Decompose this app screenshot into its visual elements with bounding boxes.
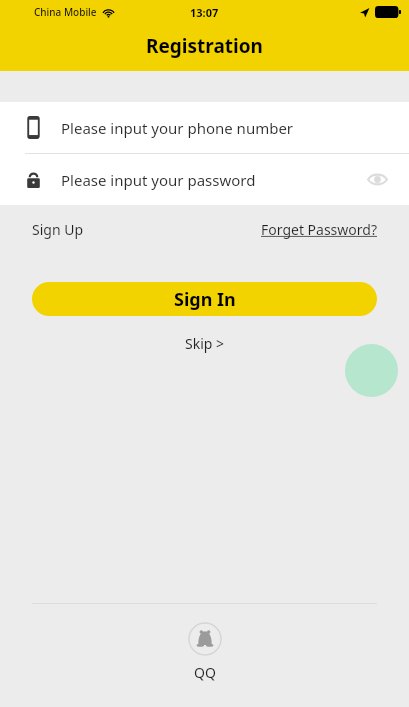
staticText: Skip > [185,334,225,353]
staticText: Forget Password? [261,220,377,239]
staticText: Sign In [174,287,236,312]
staticText: Sign Up [32,220,84,239]
button[interactable]: Sign Up [32,216,84,243]
staticText: China Mobile [34,5,97,19]
button[interactable]: Please input your password [0,154,409,205]
staticText: Please input your password [61,170,256,190]
button[interactable]: Please input your phone number [0,102,409,153]
staticText: QQ [194,663,216,682]
staticText: Please input your phone number [61,118,294,138]
staticText: 13:07 [190,5,219,20]
button[interactable]: Sign In [32,282,377,316]
button[interactable]: Sign in with QQ [188,622,222,656]
button[interactable]: Forget Password? [261,216,377,243]
button[interactable]: Skip > [175,331,235,356]
staticText: Registration [146,33,263,59]
